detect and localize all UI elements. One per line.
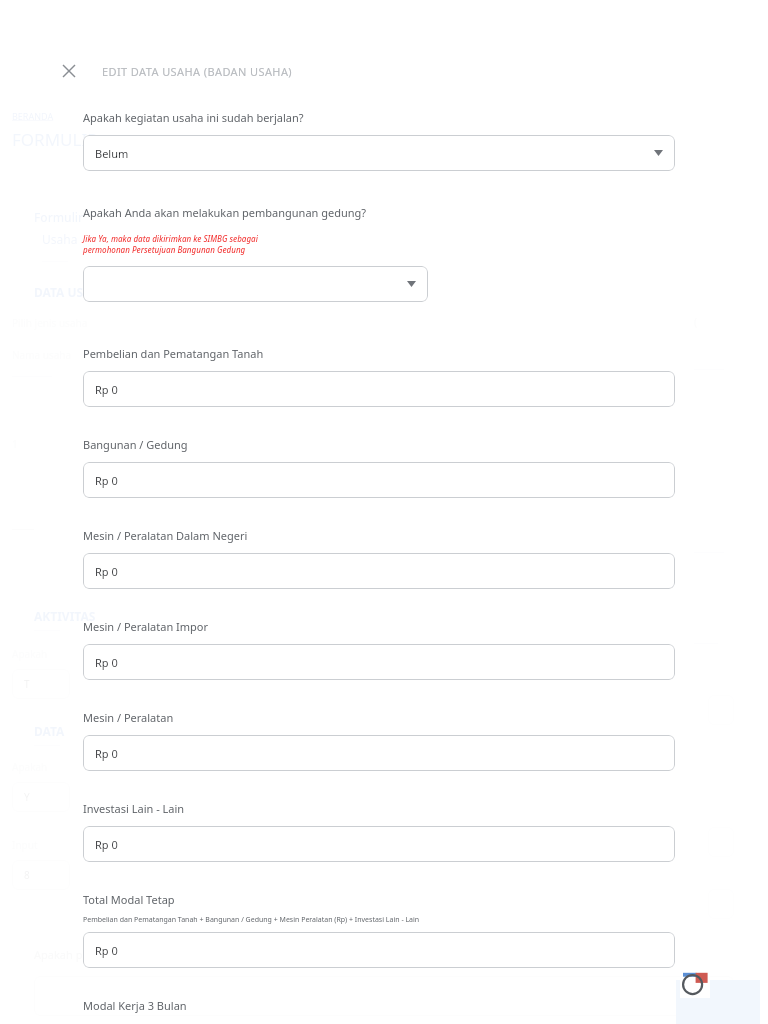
staticText: Rp 0 — [95, 837, 118, 852]
staticText: T — [24, 677, 30, 691]
staticText: Rp 0 — [95, 746, 118, 761]
button[interactable]: Rp 0 — [83, 553, 675, 589]
staticText: BERANDA — [12, 110, 54, 122]
staticText: Mesin / Peralatan — [83, 710, 174, 725]
staticText: Rp 0 — [95, 382, 118, 397]
staticText: Mesin / Peralatan Impor — [83, 619, 209, 634]
staticText: DATA — [34, 723, 65, 739]
button[interactable]: Chat assistant — [680, 970, 710, 998]
staticText: Total Modal Tetap — [83, 892, 175, 907]
staticText: Apakah perusahaan Anda memiliki Nomor Pe… — [34, 947, 512, 962]
button[interactable]: Rp 0 — [83, 826, 675, 862]
button[interactable]: Rp 0 — [83, 735, 675, 771]
button[interactable]: Rp 0 — [83, 932, 675, 968]
staticText: Pembelian dan Pematangan Tanah + Banguna… — [83, 915, 420, 925]
staticText: FORMULIR — [12, 128, 98, 151]
staticText: Rp 0 — [95, 564, 118, 579]
button[interactable] — [83, 266, 428, 302]
staticText: Belum — [95, 146, 129, 161]
staticText: Pembelian dan Pematangan Tanah — [83, 346, 264, 361]
button[interactable]: Rp 0 — [83, 462, 675, 498]
staticText: Modal Kerja 3 Bulan — [83, 998, 187, 1013]
staticText: Rp 0 — [95, 473, 118, 488]
staticText: Rp 0 — [95, 655, 118, 670]
staticText: Bangunan / Gedung — [83, 437, 188, 452]
staticText: AKTIVITAS — [34, 608, 96, 624]
staticText: Formulir — [34, 209, 84, 225]
button[interactable]: Rp 0 — [83, 644, 675, 680]
staticText: Apakah kegiatan usaha ini sudah berjalan… — [83, 110, 304, 125]
button[interactable]: Belum — [83, 135, 675, 171]
staticText: EDIT DATA USAHA (BADAN USAHA) — [102, 64, 293, 79]
button[interactable]: Rp 0 — [83, 371, 675, 407]
staticText: Y — [24, 790, 30, 804]
staticText: Mesin / Peralatan Dalam Negeri — [83, 528, 248, 543]
staticText: Usaha — [42, 231, 78, 247]
staticText: Jika Ya, maka data dikirimkan ke SIMBG s… — [83, 233, 258, 256]
staticText: Apakah Anda akan melakukan pembangunan g… — [83, 205, 367, 220]
staticText: Investasi Lain - Lain — [83, 801, 185, 816]
button[interactable]: Close — [58, 60, 80, 82]
staticText: Rp 0 — [95, 943, 118, 958]
staticText: DATA USAHA — [34, 284, 109, 300]
staticText: 8 — [24, 868, 30, 882]
